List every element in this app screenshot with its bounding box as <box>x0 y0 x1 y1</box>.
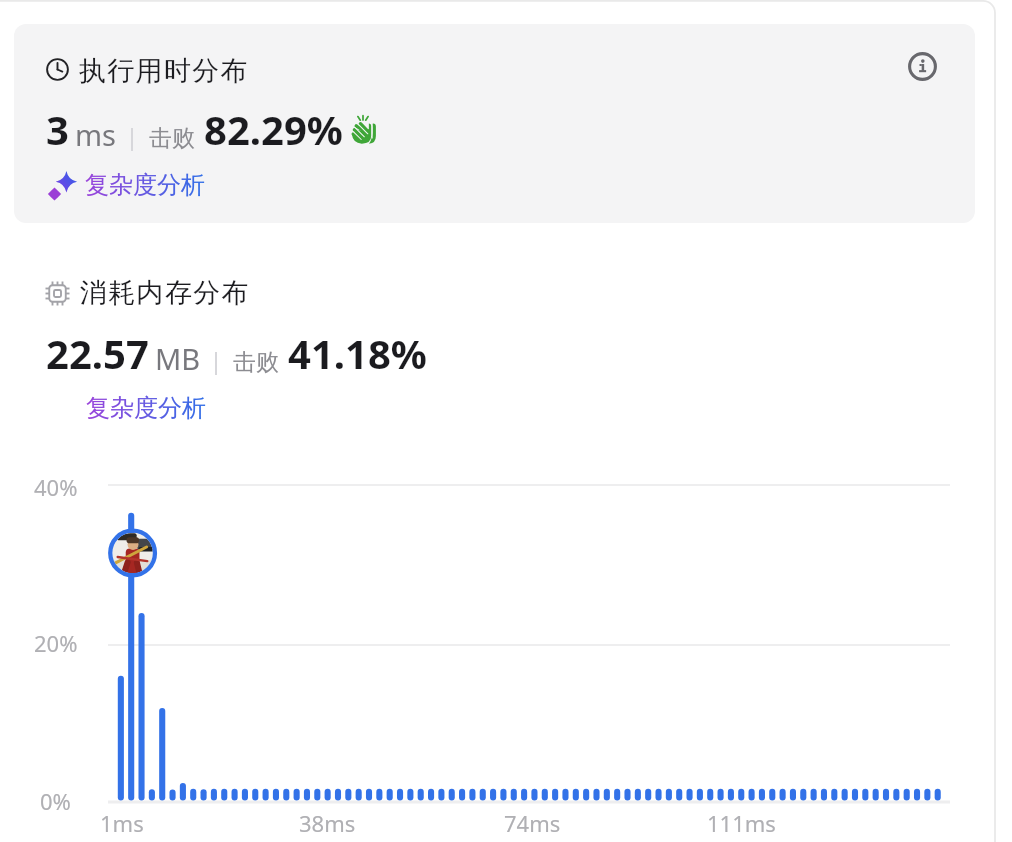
staticText: ms <box>75 115 117 154</box>
staticText: 40% <box>34 472 78 502</box>
staticText: MB <box>155 339 201 378</box>
staticText: 82.29% <box>204 102 343 156</box>
staticText: 复杂度分析 <box>86 393 206 423</box>
staticText: 击败 <box>149 124 195 153</box>
button[interactable]: 复杂度分析 <box>48 170 205 200</box>
staticText: 击败 <box>233 348 279 377</box>
staticText: 执行用时分布 <box>79 54 249 88</box>
staticText: 0% <box>40 786 71 816</box>
button[interactable]: 说明 <box>905 49 939 83</box>
staticText: 22.57 <box>46 326 149 380</box>
staticText: 复杂度分析 <box>85 170 205 200</box>
staticText: 111ms <box>707 808 776 838</box>
staticText: 消耗内存分布 <box>80 276 250 310</box>
staticText: 38ms <box>299 808 356 838</box>
staticText: 41.18% <box>288 326 427 380</box>
button[interactable]: 复杂度分析 <box>86 393 206 423</box>
staticText: 20% <box>34 628 78 658</box>
staticText: 1ms <box>100 808 144 838</box>
staticText: 3 <box>46 102 69 156</box>
staticText: 74ms <box>504 808 561 838</box>
